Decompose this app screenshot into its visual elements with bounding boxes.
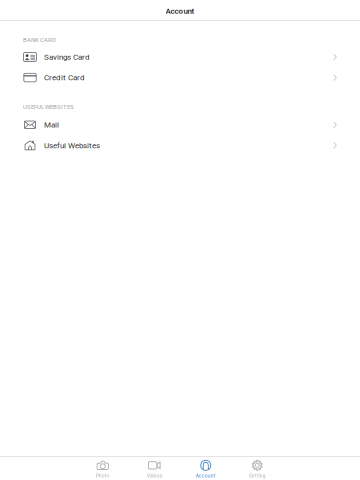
staticText: Account <box>196 473 216 479</box>
staticText: Mail <box>44 120 59 129</box>
button[interactable]: Mail <box>0 114 360 135</box>
button[interactable]: Credit Card <box>0 67 360 88</box>
staticText: BANK CARD <box>23 36 56 43</box>
staticText: Savings Card <box>44 52 90 62</box>
staticText: Setting <box>249 473 266 479</box>
button[interactable]: Savings Card <box>0 47 360 67</box>
button[interactable]: Useful Websites <box>0 135 360 156</box>
staticText: USEFUL WEBSITES <box>23 103 74 110</box>
staticText: Useful Websites <box>44 141 100 150</box>
button[interactable]: Account <box>185 457 227 480</box>
staticText: Photo <box>96 473 110 479</box>
staticText: Account <box>165 6 194 16</box>
button[interactable]: Setting <box>236 457 278 480</box>
staticText: Credit Card <box>44 73 85 82</box>
staticText: Videos <box>147 473 162 479</box>
button[interactable]: Photo <box>82 457 124 480</box>
button[interactable]: Videos <box>133 457 175 480</box>
